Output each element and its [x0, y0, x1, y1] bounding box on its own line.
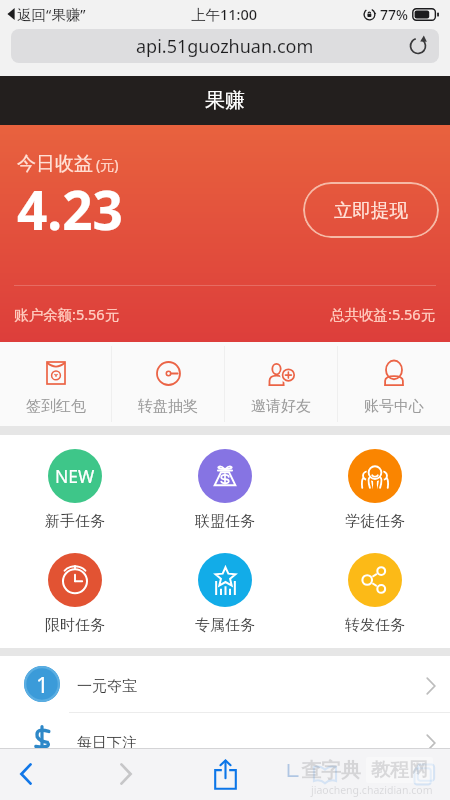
button[interactable]: Share	[205, 748, 245, 800]
staticText: api.51guozhuan.com	[136, 34, 314, 59]
button[interactable]: 限时任务	[0, 553, 150, 635]
staticText: 联盟任务	[195, 512, 255, 531]
staticText: 转发任务	[345, 616, 405, 635]
button[interactable]: Forward	[106, 748, 146, 800]
button[interactable]: Back	[6, 748, 46, 800]
staticText: 新手任务	[45, 512, 105, 531]
button[interactable]: 邀请好友	[225, 342, 337, 426]
staticText: 果赚	[205, 88, 245, 113]
staticText: 立即提现	[334, 199, 408, 222]
staticText: 签到红包	[26, 397, 86, 416]
button[interactable]: Tabs	[404, 748, 444, 800]
staticText: 账号中心	[364, 397, 424, 416]
button[interactable]: 转盘抽奖	[112, 342, 224, 426]
button[interactable]: Bookmarks	[305, 748, 345, 800]
staticText: 一元夺宝	[77, 677, 137, 696]
staticText: 限时任务	[45, 616, 105, 635]
staticText: 返回“果赚”	[17, 4, 86, 24]
button[interactable]: 学徒任务	[300, 449, 450, 531]
button[interactable]: 1	[0, 656, 450, 712]
button[interactable]: 返回“果赚”	[7, 4, 86, 24]
staticText: 77%	[380, 5, 408, 24]
button[interactable]: 签到红包	[0, 342, 111, 426]
staticText: 4.23	[17, 173, 123, 245]
staticText: 上午11:00	[191, 4, 258, 24]
button[interactable]: 账号中心	[338, 342, 450, 426]
button[interactable]: NEW	[0, 449, 150, 531]
staticText: 今日收益	[17, 152, 93, 176]
button[interactable]: 联盟任务	[150, 449, 300, 531]
button[interactable]: 专属任务	[150, 553, 300, 635]
other: Reload	[408, 36, 428, 56]
button[interactable]: 转发任务	[300, 553, 450, 635]
staticText: 专属任务	[195, 616, 255, 635]
staticText: 总共收益:5.56元	[330, 304, 436, 324]
staticText: 转盘抽奖	[138, 397, 198, 416]
staticText: 账户余额:5.56元	[14, 304, 120, 324]
staticText: 学徒任务	[345, 512, 405, 531]
staticText: NEW	[55, 464, 95, 488]
button[interactable]: 立即提现	[303, 182, 439, 238]
staticText: (元)	[96, 155, 119, 174]
staticText: jiaocheng.chazidian.com	[311, 783, 433, 797]
staticText: 1	[36, 669, 49, 699]
staticText: 查字典	[301, 758, 361, 783]
staticText: 每日下注	[77, 734, 137, 753]
button[interactable]: 每日下注	[0, 713, 450, 769]
staticText: 邀请好友	[251, 397, 311, 416]
button[interactable]: api.51guozhuan.com	[11, 29, 439, 63]
staticText: 教程网	[371, 758, 428, 782]
